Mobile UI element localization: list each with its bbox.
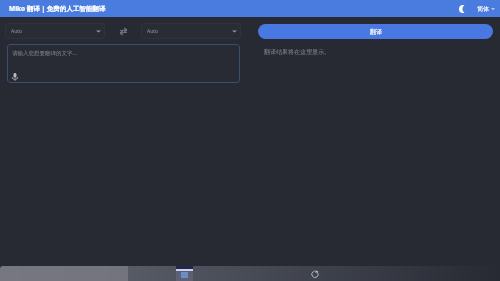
button[interactable]: 请输入您想要翻译的文字... (7, 44, 240, 83)
staticText: 请输入您想要翻译的文字... (12, 49, 77, 57)
button[interactable]: Miko translate window (176, 266, 193, 281)
button[interactable]: 翻译 (258, 24, 493, 39)
staticText: 翻译结果将在这里显示。 (264, 48, 330, 56)
staticText: Auto (11, 28, 23, 35)
staticText: 翻译 (370, 28, 382, 36)
staticText: Auto (147, 28, 159, 35)
button[interactable]: Toggle dark mode (456, 2, 469, 15)
staticText: 简体 (477, 5, 489, 13)
button[interactable]: 简体 (475, 3, 497, 15)
button[interactable]: Back (308, 267, 321, 280)
button[interactable]: Auto (141, 23, 241, 39)
staticText: Miko 翻译 | 免费的人工智能翻译 (9, 4, 106, 13)
button[interactable]: Swap languages (105, 23, 141, 39)
button[interactable]: Auto (5, 23, 105, 39)
